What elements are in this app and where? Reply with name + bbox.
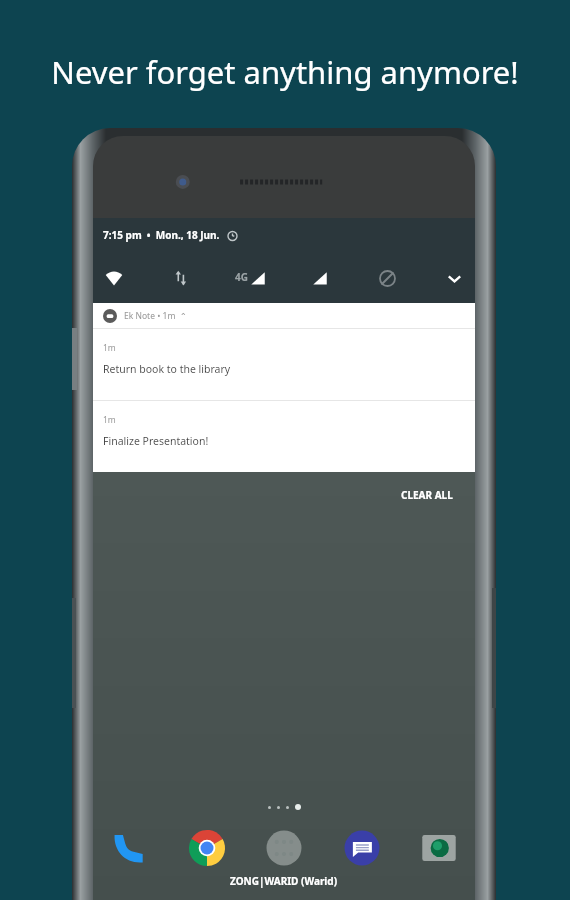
staticText: 4G (235, 270, 248, 284)
staticText: 1m (103, 414, 116, 426)
button[interactable]: Signal (307, 265, 333, 291)
button[interactable]: Mobile data (168, 265, 194, 291)
staticText: 7:15 pm • Mon., 18 Jun. (103, 228, 220, 242)
button[interactable]: Camera (415, 824, 463, 872)
staticText: CLEAR ALL (401, 488, 453, 502)
button[interactable]: All apps (260, 824, 308, 872)
button[interactable]: 1m (93, 329, 475, 400)
button[interactable]: Wi-Fi (101, 265, 127, 291)
staticText: ZONG|WARID (Warid) (230, 874, 338, 888)
staticText: Ek Note • 1m ⌃ (124, 310, 187, 322)
staticText: 1m (103, 342, 116, 354)
button[interactable]: Chrome (183, 824, 231, 872)
button[interactable]: Phone (105, 824, 153, 872)
button[interactable]: Expand (441, 265, 467, 291)
staticText: Return book to the library (103, 362, 231, 376)
staticText: Never forget anything anymore! (51, 51, 519, 93)
button[interactable]: Do not disturb (374, 265, 400, 291)
staticText: Finalize Presentation! (103, 434, 209, 448)
button[interactable]: 1m (93, 401, 475, 472)
button[interactable]: Signal 4G (235, 270, 266, 286)
button[interactable]: CLEAR ALL (397, 484, 457, 506)
button[interactable]: Messages (338, 824, 386, 872)
button[interactable]: Ek Note • 1m ⌃ (93, 303, 475, 328)
